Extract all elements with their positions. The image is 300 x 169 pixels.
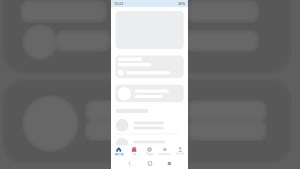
staticText: Pay bbox=[132, 152, 136, 156]
staticText: Plazos bbox=[145, 152, 153, 156]
button[interactable]: Perfil bbox=[173, 145, 188, 157]
staticText: Perfil bbox=[176, 152, 184, 156]
button[interactable]: Tarjetas bbox=[111, 145, 126, 157]
staticText: Promociones bbox=[158, 152, 172, 156]
staticText: 46% bbox=[178, 1, 185, 6]
staticText: Tarjetas bbox=[114, 152, 123, 156]
button[interactable]: Plazos bbox=[142, 145, 157, 157]
button[interactable]: Pay bbox=[126, 145, 142, 157]
button[interactable]: Promociones bbox=[157, 145, 173, 157]
staticText: 10:22 bbox=[114, 1, 123, 6]
